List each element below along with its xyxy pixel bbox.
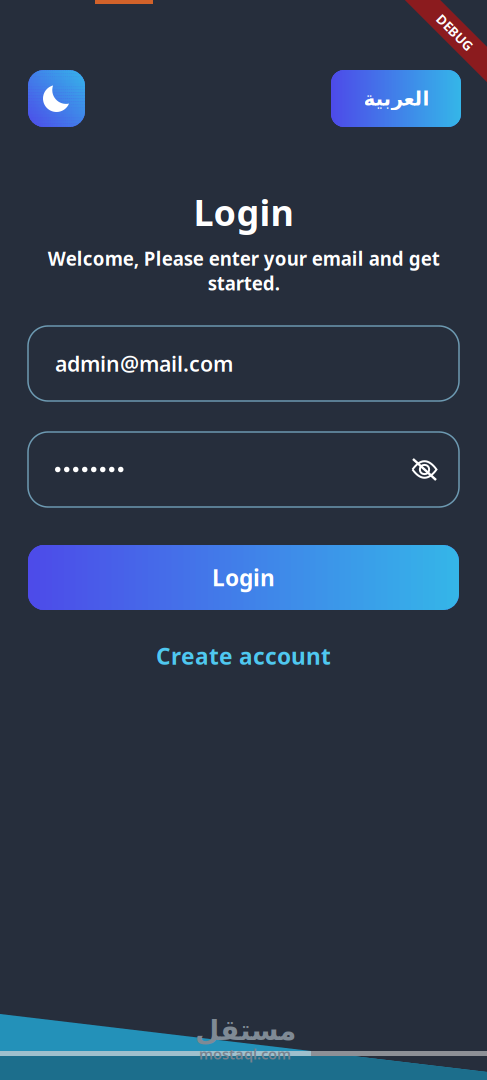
staticText: admin@mail.com [55, 349, 233, 378]
staticText: Login [193, 188, 293, 236]
staticText: Welcome, Please enter your email and get… [47, 246, 439, 296]
staticText: العربية [363, 87, 429, 110]
staticText: Create account [156, 641, 331, 671]
staticText: mostaql.com [199, 1044, 291, 1064]
staticText: DEBUG [432, 24, 478, 41]
button[interactable]: العربية [331, 70, 461, 127]
staticText: مستقل [194, 1014, 295, 1046]
staticText: Login [212, 562, 275, 592]
button[interactable]: Create account [113, 639, 373, 673]
button[interactable]: Login [28, 545, 459, 610]
button[interactable]: Show password [411, 458, 459, 481]
button[interactable]: Toggle dark mode [28, 70, 85, 127]
